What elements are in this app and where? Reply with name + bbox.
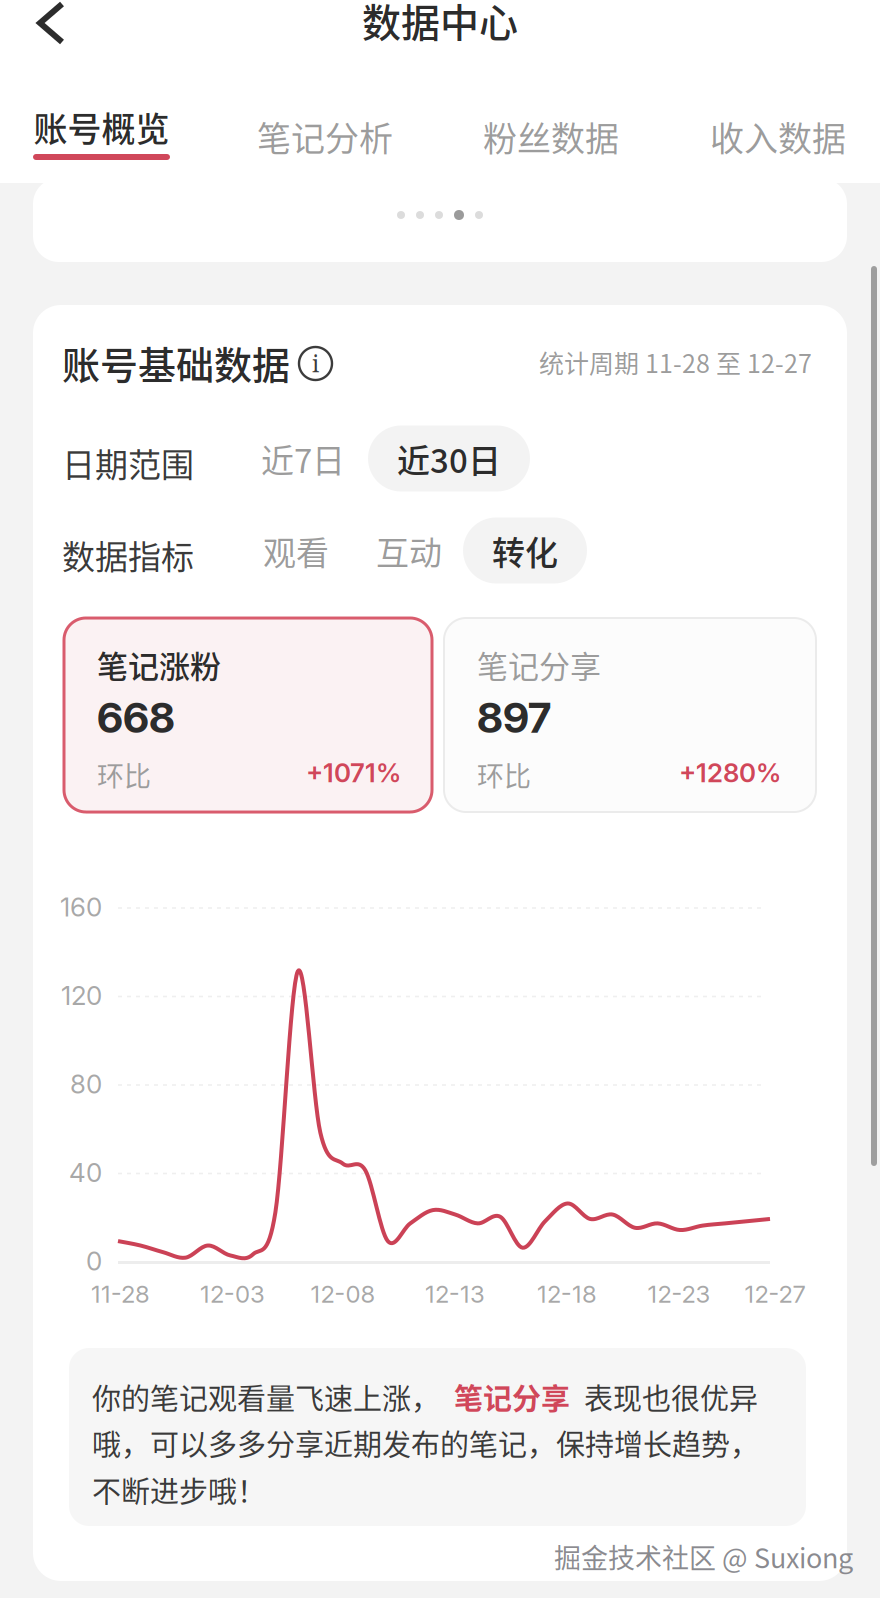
staticText: 统计周期 11-28 至 12-27 (539, 344, 812, 380)
staticText: 笔记分析 (257, 112, 393, 161)
staticText: 12-03 (200, 1279, 265, 1308)
button[interactable]: 近30日 (368, 425, 530, 491)
staticText: 数据指标 (62, 531, 194, 579)
staticText: 897 (477, 692, 551, 743)
staticText: 近30日 (397, 435, 501, 482)
button[interactable]: 观看 (234, 517, 358, 583)
staticText: 12-18 (537, 1279, 597, 1308)
staticText: 账号概览 (33, 102, 169, 152)
staticText: 你的笔记观看量飞速上涨， (92, 1376, 440, 1418)
staticText: 哦，可以多多分享近期发布的笔记，保持增长趋势， (92, 1422, 759, 1464)
button[interactable]: 粉丝数据 (448, 90, 654, 183)
staticText: 笔记涨粉 (97, 642, 221, 687)
staticText: 收入数据 (710, 112, 846, 161)
staticText: 12-08 (310, 1279, 375, 1308)
staticText: 160 (60, 891, 102, 923)
staticText: 转化 (492, 527, 558, 574)
button[interactable]: 近7日 (232, 425, 374, 491)
staticText: 近7日 (261, 435, 345, 482)
staticText: 数据中心 (362, 0, 518, 48)
staticText: 环比 (477, 755, 531, 794)
staticText: i (312, 348, 319, 379)
staticText: 0 (86, 1245, 102, 1277)
staticText: +1280% (679, 757, 781, 788)
staticText: 40 (69, 1157, 102, 1188)
button[interactable]: 转化 (463, 517, 587, 583)
staticText: 120 (61, 980, 102, 1011)
staticText: 掘金技术社区 @ Suxiong (554, 1537, 853, 1576)
staticText: 笔记分享 (440, 1376, 584, 1418)
staticText: 笔记分享 (477, 642, 601, 687)
button[interactable]: 互动 (347, 517, 471, 583)
staticText: 12-23 (647, 1279, 710, 1308)
button[interactable]: 笔记涨粉 (64, 618, 432, 812)
staticText: +1071% (306, 757, 401, 788)
button[interactable]: 收入数据 (675, 90, 880, 183)
staticText: 粉丝数据 (483, 112, 619, 161)
staticText: 668 (97, 692, 175, 743)
staticText: 观看 (263, 527, 329, 574)
staticText: 环比 (97, 755, 151, 794)
button[interactable]: 笔记分享 (444, 618, 816, 812)
staticText: 不断进步哦！ (92, 1469, 266, 1511)
staticText: 80 (70, 1068, 102, 1100)
staticText: 12-27 (744, 1279, 805, 1308)
staticText: 账号基础数据 (62, 335, 290, 390)
button[interactable]: 返回 (5, 0, 97, 61)
button[interactable]: 说明 (299, 347, 332, 380)
staticText: 12-13 (425, 1279, 485, 1308)
staticText: 表现也很优异 (584, 1376, 758, 1418)
button[interactable]: 账号概览 (0, 90, 203, 183)
staticText: 日期范围 (62, 439, 194, 487)
staticText: 互动 (376, 527, 442, 574)
button[interactable]: 笔记分析 (222, 90, 428, 183)
staticText: 11-28 (91, 1279, 150, 1308)
